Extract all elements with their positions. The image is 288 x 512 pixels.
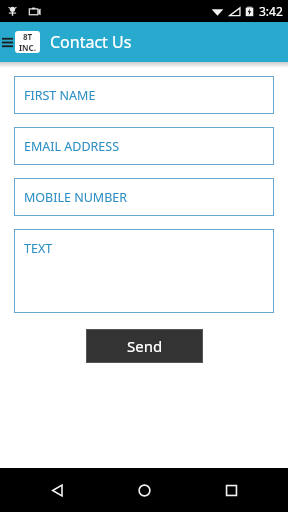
staticText: Contact Us	[50, 31, 132, 53]
staticText: 8T	[23, 31, 33, 42]
button[interactable]: EMAIL ADDRESS	[14, 127, 274, 165]
button[interactable]: TEXT	[14, 229, 274, 313]
staticText: EMAIL ADDRESS	[24, 138, 120, 155]
staticText: TEXT	[24, 240, 53, 257]
button[interactable]: Open navigation menu	[1, 22, 14, 62]
staticText: MOBILE NUMBER	[24, 189, 128, 206]
staticText: FIRST NAME	[24, 87, 96, 104]
button[interactable]: Home	[114, 468, 174, 512]
button[interactable]: Recent apps	[201, 468, 261, 512]
button[interactable]: Send	[86, 329, 203, 363]
staticText: Send	[127, 336, 163, 356]
button[interactable]: Back	[27, 468, 87, 512]
staticText: 3:42	[259, 3, 283, 19]
button[interactable]: MOBILE NUMBER	[14, 178, 274, 216]
button[interactable]: FIRST NAME	[14, 76, 274, 114]
staticText: INC.	[19, 42, 36, 53]
button[interactable]: 8T	[15, 31, 40, 53]
